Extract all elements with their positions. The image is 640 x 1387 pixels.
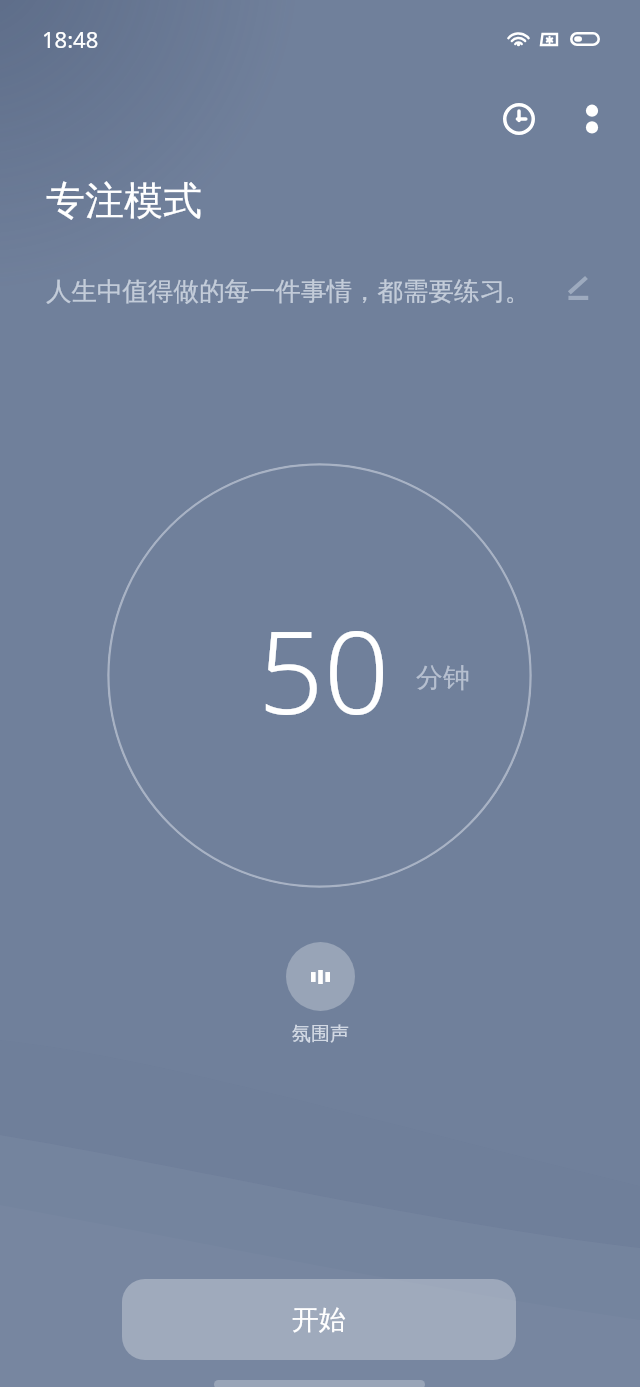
button[interactable]: Ambient sound xyxy=(286,942,355,1011)
button[interactable]: 50 xyxy=(107,463,532,888)
staticText: 50 xyxy=(258,591,390,748)
button[interactable]: Edit xyxy=(559,268,599,308)
staticText: 氛围声 xyxy=(292,1022,349,1046)
button[interactable]: 开始 xyxy=(122,1279,516,1360)
staticText: 专注模式 xyxy=(46,176,202,225)
staticText: 人生中值得做的每一件事情，都需要练习。 xyxy=(46,275,531,307)
staticText: 开始 xyxy=(292,1303,346,1337)
staticText: 18:48 xyxy=(42,24,99,54)
button[interactable]: History xyxy=(490,90,547,147)
staticText: 分钟 xyxy=(416,661,470,695)
button[interactable]: More options xyxy=(563,90,620,147)
